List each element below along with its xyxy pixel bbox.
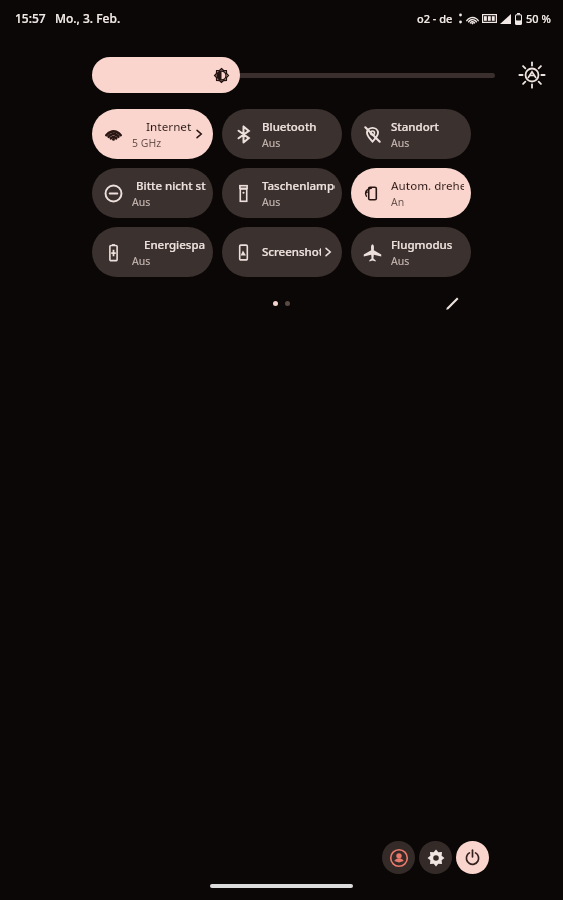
staticText: Aus xyxy=(262,195,281,209)
staticText: Aus xyxy=(391,254,410,268)
staticText: Screenshot xyxy=(262,244,321,260)
button[interactable]: Power xyxy=(456,841,489,874)
button[interactable]: Standort xyxy=(351,109,471,159)
button[interactable]: User xyxy=(382,841,415,874)
button[interactable]: Autom. drehen xyxy=(351,168,471,218)
staticText: Mo., 3. Feb. xyxy=(55,10,121,26)
button[interactable]: Auto brightness xyxy=(513,56,551,94)
staticText: Bluetooth xyxy=(262,119,317,135)
button[interactable]: Bitte nicht st xyxy=(92,168,213,218)
staticText: Aus xyxy=(132,195,151,209)
button[interactable]: Bluetooth xyxy=(222,109,342,159)
button[interactable]: Taschenlampe xyxy=(222,168,342,218)
button[interactable]: Energiespa xyxy=(92,227,213,277)
button[interactable]: Brightness xyxy=(92,57,495,93)
staticText: Flugmodus xyxy=(391,237,453,253)
button[interactable]: Settings xyxy=(419,841,452,874)
staticText: 15:57 xyxy=(15,10,46,26)
staticText: Aus xyxy=(391,136,410,150)
staticText: Bitte nicht st xyxy=(136,178,206,194)
staticText: An xyxy=(391,195,405,209)
staticText: 5 GHz xyxy=(132,136,162,150)
button[interactable]: Screenshot xyxy=(222,227,342,277)
button[interactable]: Edit tiles xyxy=(439,290,465,316)
staticText: Aus xyxy=(132,254,151,268)
staticText: 50 % xyxy=(526,11,551,26)
staticText: Autom. drehen xyxy=(391,178,464,194)
staticText: Standort xyxy=(391,119,439,135)
staticText: Internet xyxy=(146,119,192,135)
staticText: Taschenlampe xyxy=(262,178,335,194)
staticText: Energiespa xyxy=(144,237,206,253)
staticText: Aus xyxy=(262,136,281,150)
staticText: o2 - de xyxy=(417,11,453,26)
button[interactable]: Internet xyxy=(92,109,213,159)
button[interactable]: Flugmodus xyxy=(351,227,471,277)
